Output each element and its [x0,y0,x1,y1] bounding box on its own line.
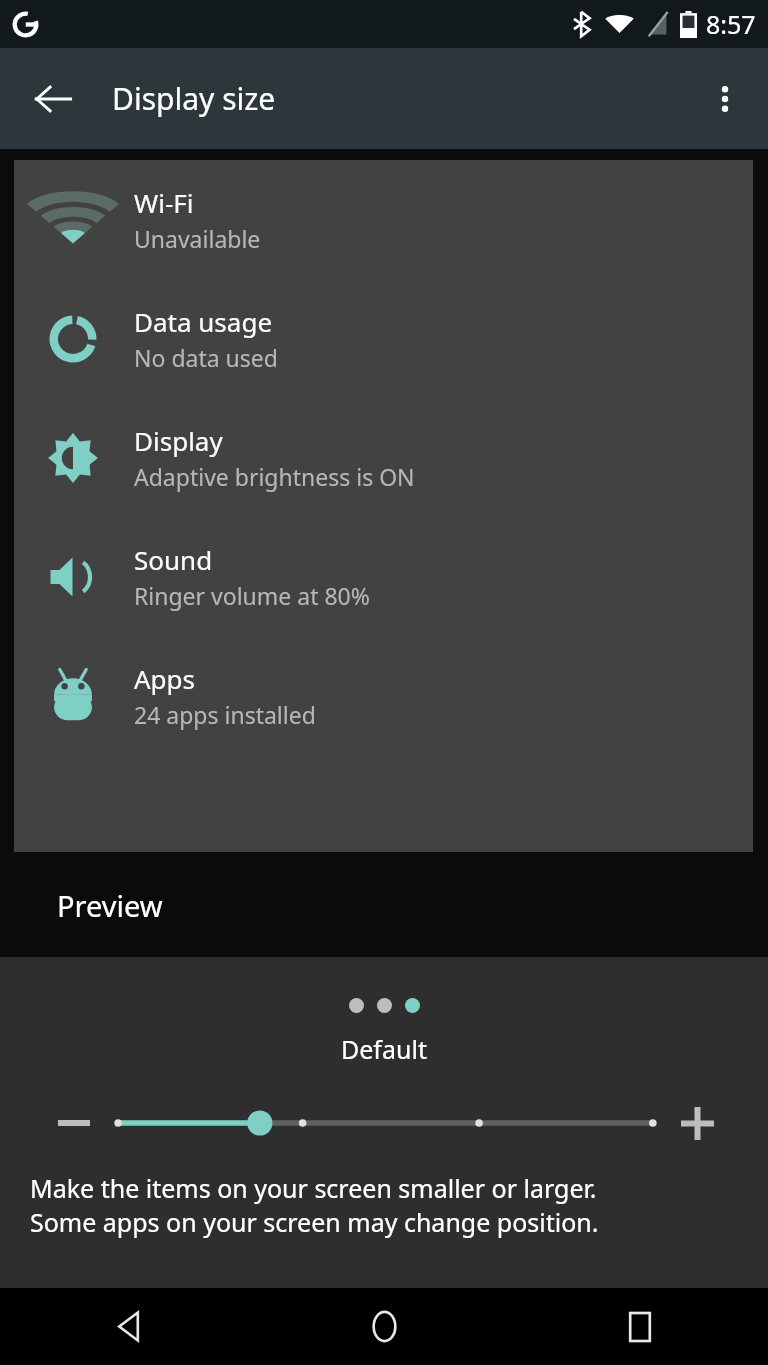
staticText: Preview [57,886,163,925]
staticText: No data used [134,342,278,373]
button[interactable]: Display [14,398,753,517]
staticText: 24 apps installed [134,699,316,730]
button[interactable]: Navigate up [22,68,84,130]
staticText: Display [134,423,223,458]
staticText: Display size [112,78,276,119]
button[interactable]: Sound [14,517,753,636]
staticText: Unavailable [134,223,261,254]
staticText: Adaptive brightness is ON [134,461,415,492]
button[interactable]: Wi-Fi [14,160,753,279]
button[interactable]: Increase display size [664,1095,730,1151]
staticText: Default [341,1032,427,1066]
button[interactable]: Back [0,1288,256,1365]
button[interactable]: Recent apps [512,1288,768,1365]
staticText: Wi-Fi [134,185,194,220]
staticText: Apps [134,661,196,696]
button[interactable]: More options [694,68,756,130]
button[interactable]: Decrease display size [41,1095,107,1151]
staticText: Data usage [134,304,273,339]
button[interactable]: Home [256,1288,512,1365]
staticText: Sound [134,542,213,577]
button[interactable] [107,1095,664,1151]
staticText: Make the items on your screen smaller or… [30,1171,750,1240]
staticText: Ringer volume at 80% [134,580,370,611]
staticText: 8:57 [706,7,756,41]
button[interactable]: Data usage [14,279,753,398]
button[interactable]: Apps [14,636,753,755]
